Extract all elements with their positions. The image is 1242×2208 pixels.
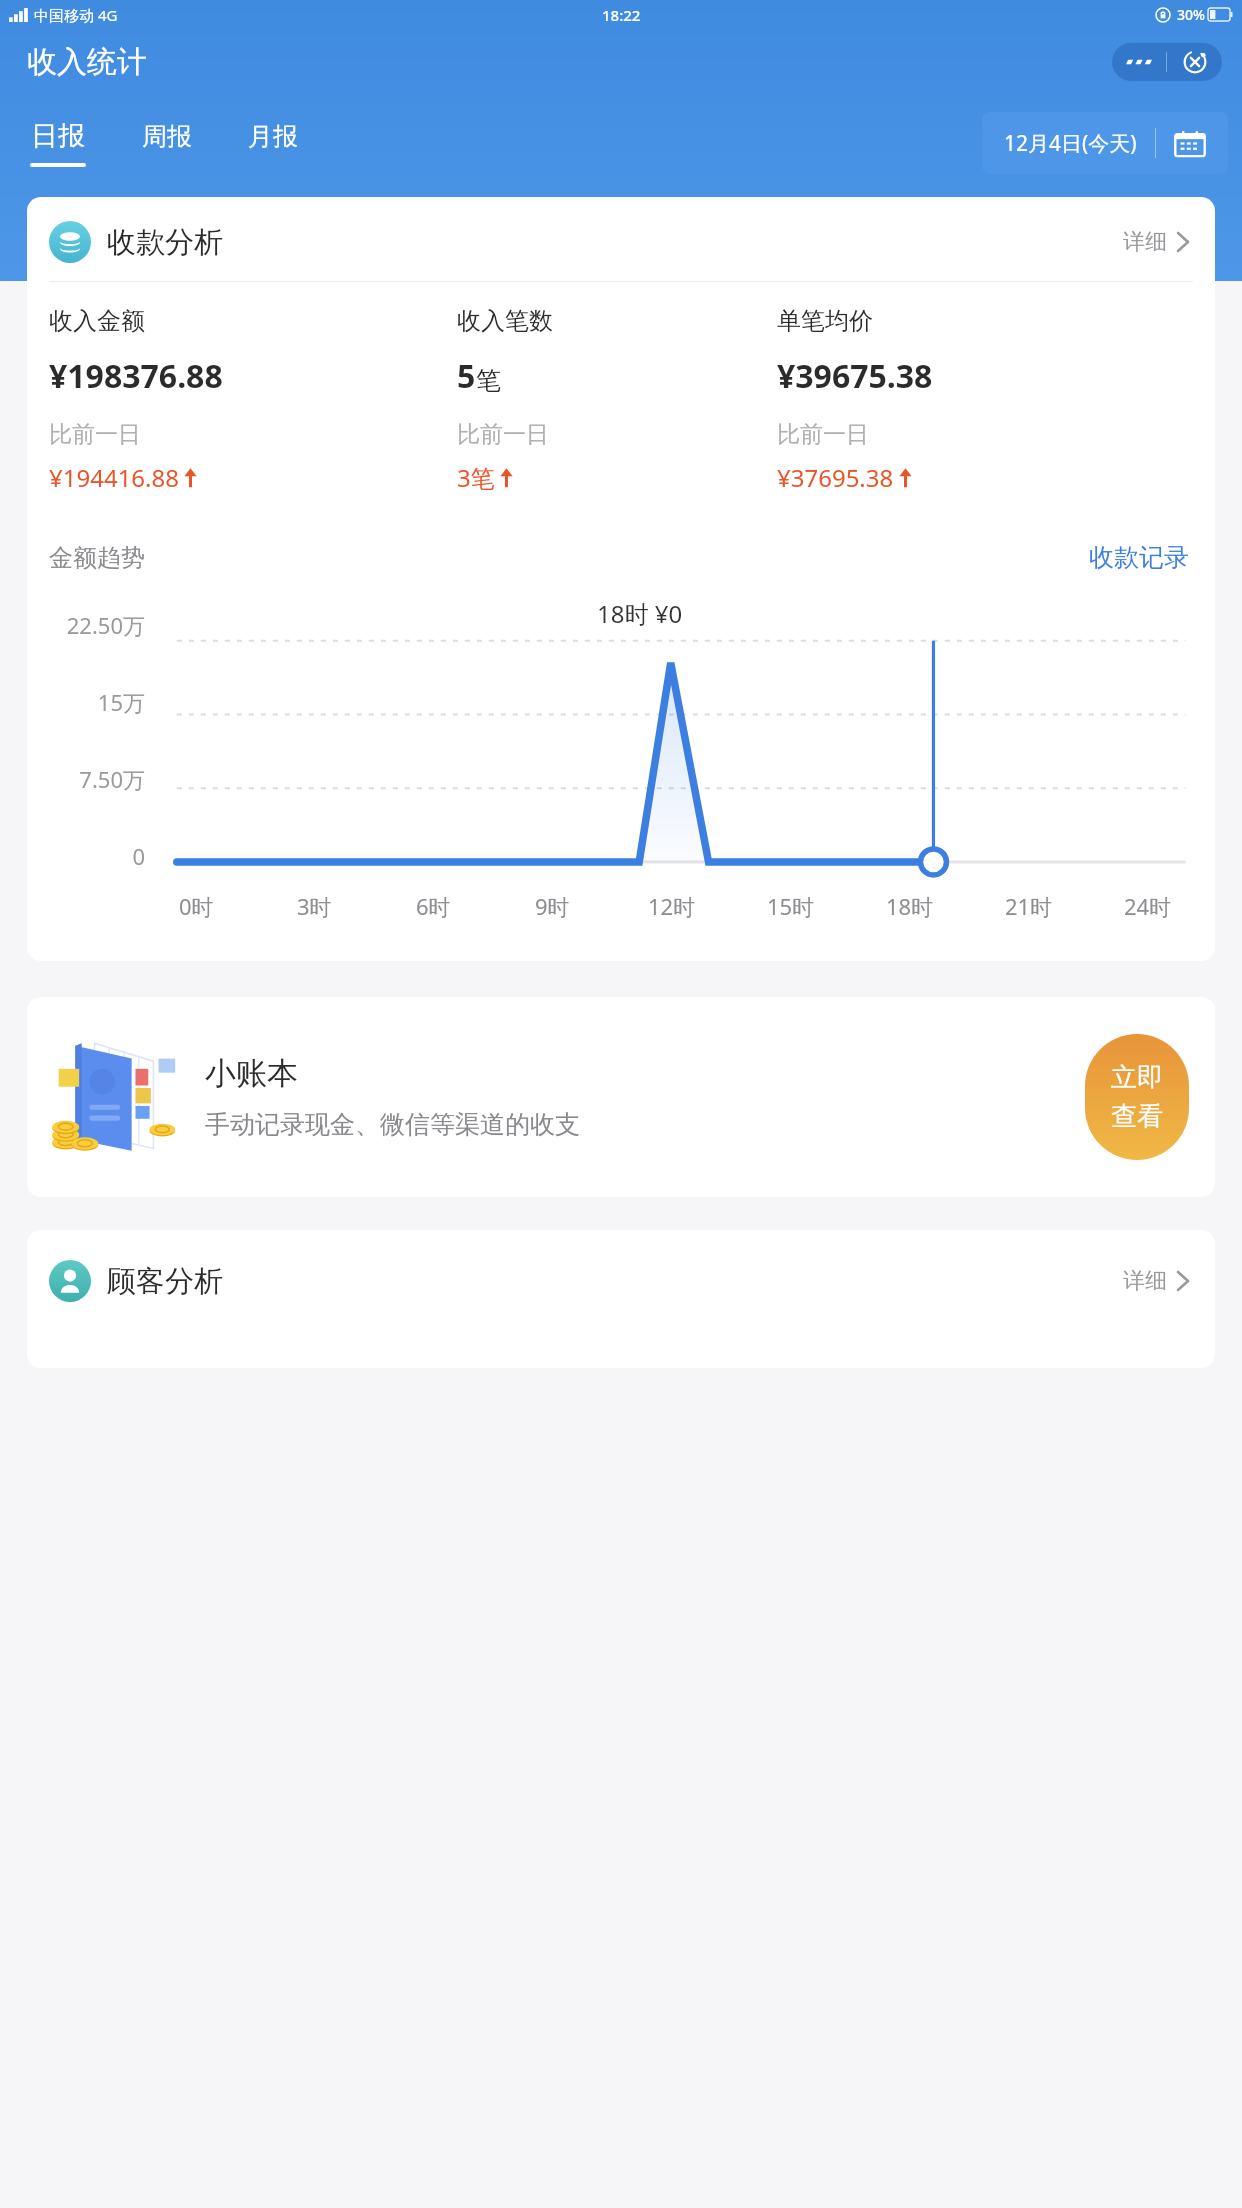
staticText: 单笔均价 — [777, 306, 873, 336]
button[interactable]: 详细 — [1119, 1263, 1193, 1299]
button[interactable]: 收款分析 — [27, 197, 1215, 961]
staticText: 收入金额 — [49, 306, 145, 336]
button[interactable]: 周报 — [138, 119, 196, 168]
staticText: 30% — [1177, 5, 1205, 24]
staticText: 笔 — [476, 365, 501, 396]
staticText: 15时 — [767, 891, 815, 921]
button[interactable]: Close — [1167, 43, 1222, 81]
other: Pick date — [1174, 127, 1206, 159]
staticText: 18时 ¥0 — [597, 597, 683, 630]
staticText: 中国移动 4G — [34, 5, 118, 25]
staticText: 3笔 — [457, 461, 495, 494]
staticText: 21时 — [1005, 891, 1053, 921]
staticText: 详细 — [1123, 1267, 1167, 1295]
staticText: 比前一日 — [457, 420, 549, 449]
staticText: 收款分析 — [107, 224, 223, 261]
staticText: 5 — [457, 354, 476, 398]
button[interactable]: 月报 — [244, 119, 302, 168]
button[interactable]: 收款记录 — [1085, 538, 1193, 577]
button[interactable]: 立即 — [1085, 1034, 1189, 1160]
staticText: 日报 — [31, 119, 85, 153]
button[interactable]: More — [1112, 43, 1166, 81]
staticText: 比前一日 — [777, 420, 869, 449]
staticText: ¥39675.38 — [777, 354, 933, 398]
staticText: 手动记录现金、微信等渠道的收支 — [205, 1109, 580, 1140]
staticText: 3时 — [297, 891, 332, 921]
staticText: 收入笔数 — [457, 306, 553, 336]
staticText: 比前一日 — [49, 420, 141, 449]
staticText: 顾客分析 — [107, 1263, 223, 1300]
staticText: 12月4日(今天) — [1004, 129, 1137, 158]
staticText: 9时 — [535, 891, 570, 921]
staticText: 周报 — [142, 121, 192, 152]
staticText: 立即 — [1111, 1061, 1163, 1094]
staticText: ¥198376.88 — [49, 354, 223, 398]
staticText: 18:22 — [602, 5, 641, 25]
staticText: 7.50万 — [79, 764, 145, 794]
staticText: 收入统计 — [27, 43, 147, 81]
staticText: 22.50万 — [66, 610, 145, 640]
staticText: 15万 — [97, 687, 145, 717]
button[interactable]: 日报 — [26, 117, 90, 169]
staticText: 金额趋势 — [49, 543, 145, 573]
staticText: 详细 — [1123, 228, 1167, 256]
staticText: 收款记录 — [1089, 542, 1189, 573]
staticText: ¥194416.88 — [49, 461, 179, 494]
staticText: 0时 — [179, 891, 214, 921]
button[interactable]: 顾客分析 — [27, 1230, 1215, 1368]
button[interactable]: 小账本 — [27, 997, 1215, 1197]
staticText: 月报 — [248, 121, 298, 152]
staticText: 小账本 — [205, 1054, 298, 1093]
staticText: ¥37695.38 — [777, 461, 894, 494]
button[interactable]: 12月4日(今天) — [982, 112, 1228, 174]
button[interactable]: 详细 — [1119, 224, 1193, 260]
staticText: 18时 — [886, 891, 934, 921]
staticText: 12时 — [648, 891, 696, 921]
button[interactable]: More — [1112, 43, 1222, 81]
staticText: 查看 — [1111, 1100, 1163, 1133]
staticText: 6时 — [416, 891, 451, 921]
staticText: 0 — [132, 841, 145, 871]
staticText: 24时 — [1124, 891, 1172, 921]
